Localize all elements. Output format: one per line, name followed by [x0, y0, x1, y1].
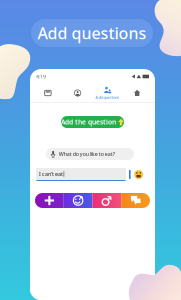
staticText: Add questions	[37, 22, 146, 44]
button[interactable]: Chat	[121, 193, 150, 208]
staticText: I can't eat	[39, 170, 63, 178]
button[interactable]: Stickers	[64, 193, 93, 208]
button[interactable]: Add	[35, 193, 64, 208]
staticText: What do you like to eat?	[59, 150, 115, 158]
staticText: Add the question	[61, 118, 116, 126]
button[interactable]: Profile	[63, 84, 93, 102]
button[interactable]: Add the question	[61, 116, 124, 128]
staticText: 4:19	[36, 73, 46, 80]
button[interactable]: Emoji	[134, 169, 144, 179]
button[interactable]: Add questions	[92, 84, 122, 102]
button[interactable]: Gender	[92, 193, 121, 208]
button[interactable]: Home	[122, 84, 152, 102]
staticText: Add questions	[95, 95, 119, 100]
button[interactable]: Cards	[33, 84, 63, 102]
